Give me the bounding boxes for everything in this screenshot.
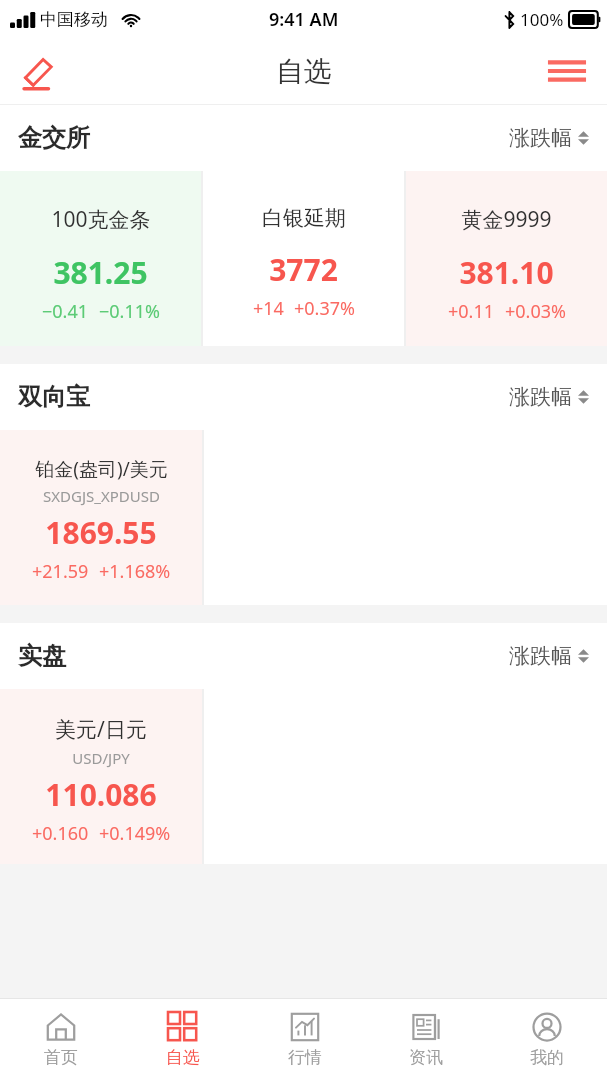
staticText: 实盘 <box>18 641 66 671</box>
staticText: 双向宝 <box>18 382 90 412</box>
staticText: 9:41 AM <box>269 7 339 32</box>
staticText: 资讯 <box>409 1047 443 1068</box>
staticText: +0.03% <box>505 299 566 324</box>
staticText: +0.37% <box>294 296 355 321</box>
staticText: +21.59 <box>32 559 89 584</box>
staticText: 美元/日元 <box>55 715 147 744</box>
staticText: 涨跌幅 <box>509 125 572 151</box>
staticText: 100% <box>520 8 564 31</box>
staticText: +1.168% <box>99 559 171 584</box>
staticText: 381.25 <box>53 252 148 293</box>
staticText: 我的 <box>530 1047 564 1068</box>
staticText: 100克金条 <box>51 205 151 234</box>
staticText: 黄金9999 <box>461 205 552 234</box>
staticText: 110.086 <box>45 774 157 815</box>
staticText: 381.10 <box>459 252 554 293</box>
button[interactable]: 100克金条 <box>0 171 201 346</box>
button[interactable]: 首页 <box>0 999 122 1080</box>
staticText: 1869.55 <box>45 512 157 553</box>
staticText: 首页 <box>44 1047 78 1068</box>
staticText: 行情 <box>288 1047 322 1068</box>
staticText: +0.11 <box>448 299 495 324</box>
button[interactable]: 涨跌幅 <box>505 378 593 416</box>
button[interactable]: 行情 <box>244 999 365 1080</box>
button[interactable]: 黄金9999 <box>406 171 607 346</box>
button[interactable]: 铂金(盎司)/美元 <box>0 430 202 605</box>
staticText: 中国移动 <box>40 9 108 30</box>
staticText: 涨跌幅 <box>509 643 572 669</box>
staticText: 白银延期 <box>262 205 346 231</box>
staticText: +0.160 <box>32 821 89 846</box>
button[interactable]: 自选 <box>122 999 244 1080</box>
staticText: −0.11% <box>99 299 160 324</box>
staticText: 3772 <box>269 249 338 290</box>
button[interactable]: 白银延期 <box>203 171 404 346</box>
button[interactable]: 我的 <box>486 999 607 1080</box>
button[interactable]: 涨跌幅 <box>505 119 593 157</box>
button[interactable]: 涨跌幅 <box>505 637 593 675</box>
staticText: −0.41 <box>42 299 89 324</box>
staticText: +14 <box>253 296 284 321</box>
staticText: 涨跌幅 <box>509 384 572 410</box>
button[interactable]: Menu <box>541 45 593 97</box>
staticText: 金交所 <box>18 123 90 153</box>
staticText: SXDGJS_XPDUSD <box>43 486 160 506</box>
staticText: USD/JPY <box>72 748 130 768</box>
staticText: +0.149% <box>99 821 171 846</box>
staticText: 自选 <box>276 54 332 89</box>
button[interactable]: Edit <box>14 46 64 96</box>
button[interactable]: 资讯 <box>365 999 486 1080</box>
staticText: 自选 <box>166 1047 200 1068</box>
button[interactable]: 美元/日元 <box>0 689 202 864</box>
staticText: 铂金(盎司)/美元 <box>35 456 168 482</box>
